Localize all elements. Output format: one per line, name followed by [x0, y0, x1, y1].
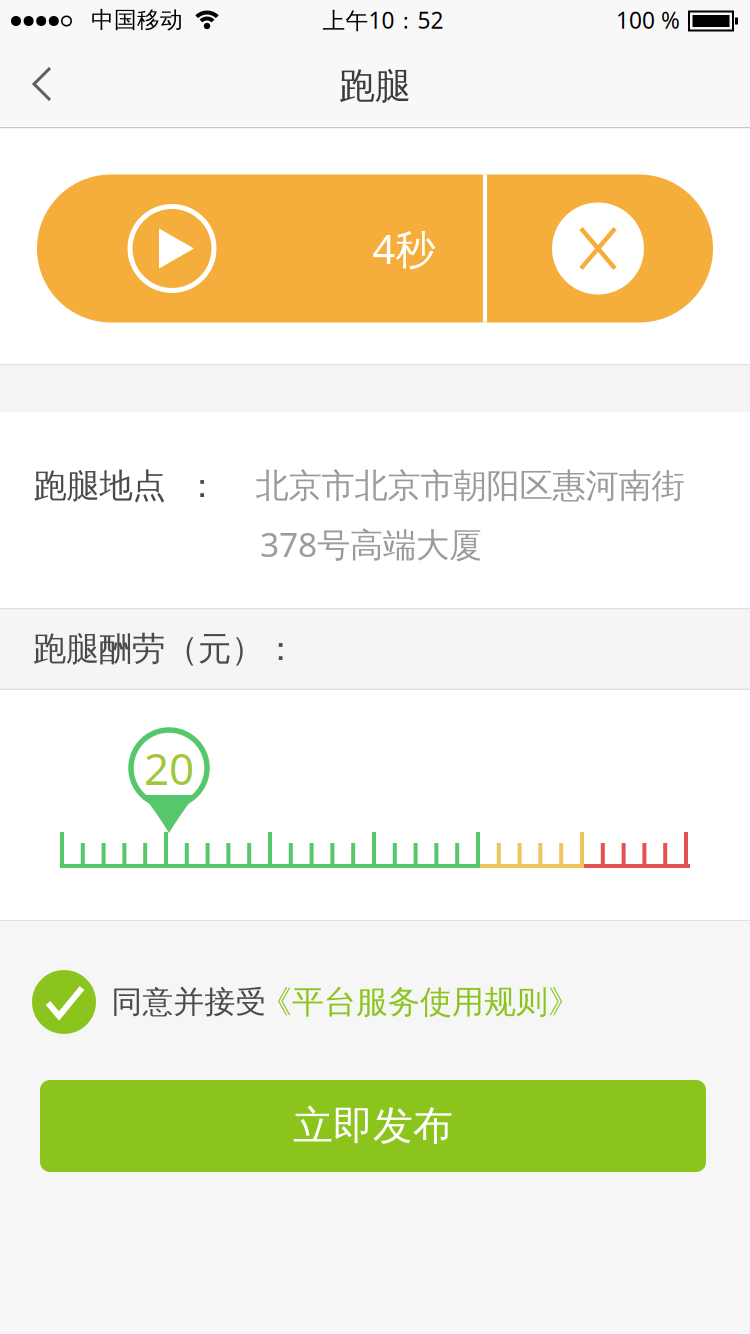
button[interactable]	[24, 64, 64, 104]
staticText: 上午10：52	[322, 5, 443, 35]
staticText: 20	[144, 739, 194, 797]
button[interactable]: 《平台服务使用规则》	[260, 982, 580, 1022]
staticText: 同意并接受	[111, 983, 266, 1021]
button[interactable]: 立即发布	[40, 1080, 706, 1172]
staticText: 100 %	[616, 5, 680, 35]
staticText: 《平台服务使用规则》	[260, 982, 580, 1022]
button[interactable]	[32, 970, 96, 1034]
staticText: 跑腿地点 ：	[33, 465, 218, 506]
staticText: 中国移动	[91, 6, 183, 34]
button[interactable]	[552, 202, 644, 294]
staticText: 北京市北京市朝阳区惠河南街	[255, 465, 684, 506]
staticText: 立即发布	[293, 1101, 453, 1150]
staticText: 378号高端大厦	[260, 522, 482, 566]
staticText: 跑腿酬劳（元）：	[33, 628, 297, 669]
button[interactable]: 4秒	[36, 174, 485, 322]
staticText: 跑腿	[339, 64, 411, 108]
staticText: 4秒	[372, 222, 435, 275]
